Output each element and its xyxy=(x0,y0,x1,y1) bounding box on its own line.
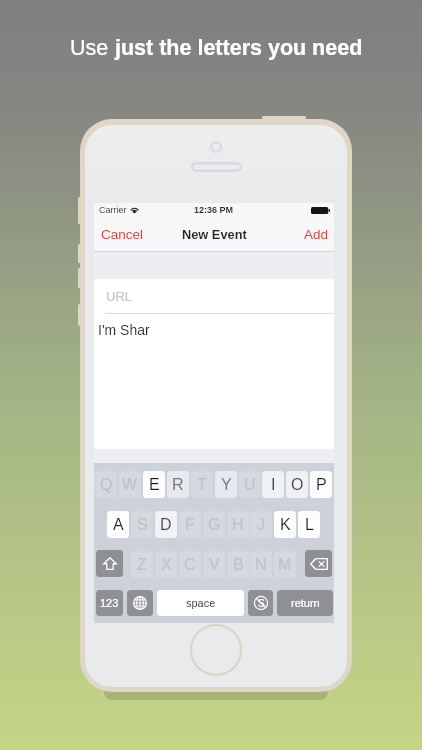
button[interactable]: H xyxy=(227,511,249,538)
button[interactable]: M xyxy=(274,551,296,578)
staticText: M xyxy=(278,556,292,574)
staticText: F xyxy=(185,516,195,534)
button[interactable]: Y xyxy=(215,471,237,498)
staticText: Add xyxy=(304,227,329,242)
button[interactable]: U xyxy=(239,471,261,498)
staticText: N xyxy=(255,556,267,574)
staticText: Use xyxy=(70,36,115,60)
staticText: return xyxy=(291,597,320,609)
button[interactable]: C xyxy=(179,551,201,578)
staticText: P xyxy=(316,476,327,494)
button[interactable]: R xyxy=(167,471,189,498)
button[interactable]: Home xyxy=(190,624,242,676)
staticText: H xyxy=(232,516,244,534)
staticText: I xyxy=(271,476,276,494)
button[interactable]: I xyxy=(262,471,284,498)
button[interactable]: D xyxy=(155,511,177,538)
staticText: V xyxy=(209,556,220,574)
staticText: K xyxy=(280,516,291,534)
button[interactable]: L xyxy=(298,511,320,538)
button[interactable]: Cancel xyxy=(94,222,152,247)
button[interactable]: S xyxy=(131,511,153,538)
staticText: 123 xyxy=(100,597,119,609)
staticText: U xyxy=(244,476,256,494)
staticText: New Event xyxy=(182,227,247,241)
staticText: 12:36 PM xyxy=(194,205,234,215)
button[interactable]: P xyxy=(310,471,332,498)
staticText: T xyxy=(197,476,207,494)
button[interactable]: Z xyxy=(131,551,153,578)
staticText: G xyxy=(208,516,221,534)
staticText: Cancel xyxy=(101,227,144,242)
staticText: E xyxy=(149,476,160,494)
staticText: W xyxy=(122,476,138,494)
button[interactable]: 123 xyxy=(96,590,123,616)
staticText: Q xyxy=(100,476,113,494)
button[interactable]: X xyxy=(155,551,177,578)
button[interactable]: E xyxy=(143,471,165,498)
staticText: J xyxy=(257,516,265,534)
button[interactable]: Q xyxy=(95,471,117,498)
button[interactable]: Add xyxy=(296,222,334,247)
staticText: D xyxy=(160,516,172,534)
button[interactable]: URL xyxy=(94,279,334,313)
staticText: just the letters you need xyxy=(115,36,363,60)
button[interactable]: V xyxy=(203,551,225,578)
staticText: Z xyxy=(137,556,147,574)
staticText: URL xyxy=(106,289,133,304)
button[interactable]: A xyxy=(107,511,129,538)
staticText: Y xyxy=(221,476,232,494)
staticText: S xyxy=(137,516,148,534)
button[interactable]: W xyxy=(119,471,141,498)
button[interactable]: T xyxy=(191,471,213,498)
staticText: C xyxy=(184,556,196,574)
button[interactable]: N xyxy=(250,551,272,578)
button[interactable]: O xyxy=(286,471,308,498)
staticText: B xyxy=(233,556,244,574)
staticText: L xyxy=(305,516,314,534)
button[interactable]: space xyxy=(157,590,244,616)
button[interactable]: return xyxy=(277,590,333,616)
staticText: I'm Shar xyxy=(98,322,150,338)
button[interactable]: mic xyxy=(248,590,273,616)
button[interactable]: G xyxy=(203,511,225,538)
staticText: A xyxy=(113,516,124,534)
staticText: space xyxy=(186,597,216,609)
button[interactable]: F xyxy=(179,511,201,538)
staticText: O xyxy=(291,476,304,494)
button[interactable]: B xyxy=(227,551,249,578)
button[interactable]: delete xyxy=(305,550,332,577)
staticText: S xyxy=(258,598,265,609)
button[interactable]: shift xyxy=(96,550,123,577)
button[interactable]: J xyxy=(250,511,272,538)
staticText: R xyxy=(172,476,184,494)
button[interactable]: globe xyxy=(127,590,153,616)
staticText: X xyxy=(161,556,172,574)
button[interactable]: K xyxy=(274,511,296,538)
staticText: Carrier xyxy=(99,205,127,215)
